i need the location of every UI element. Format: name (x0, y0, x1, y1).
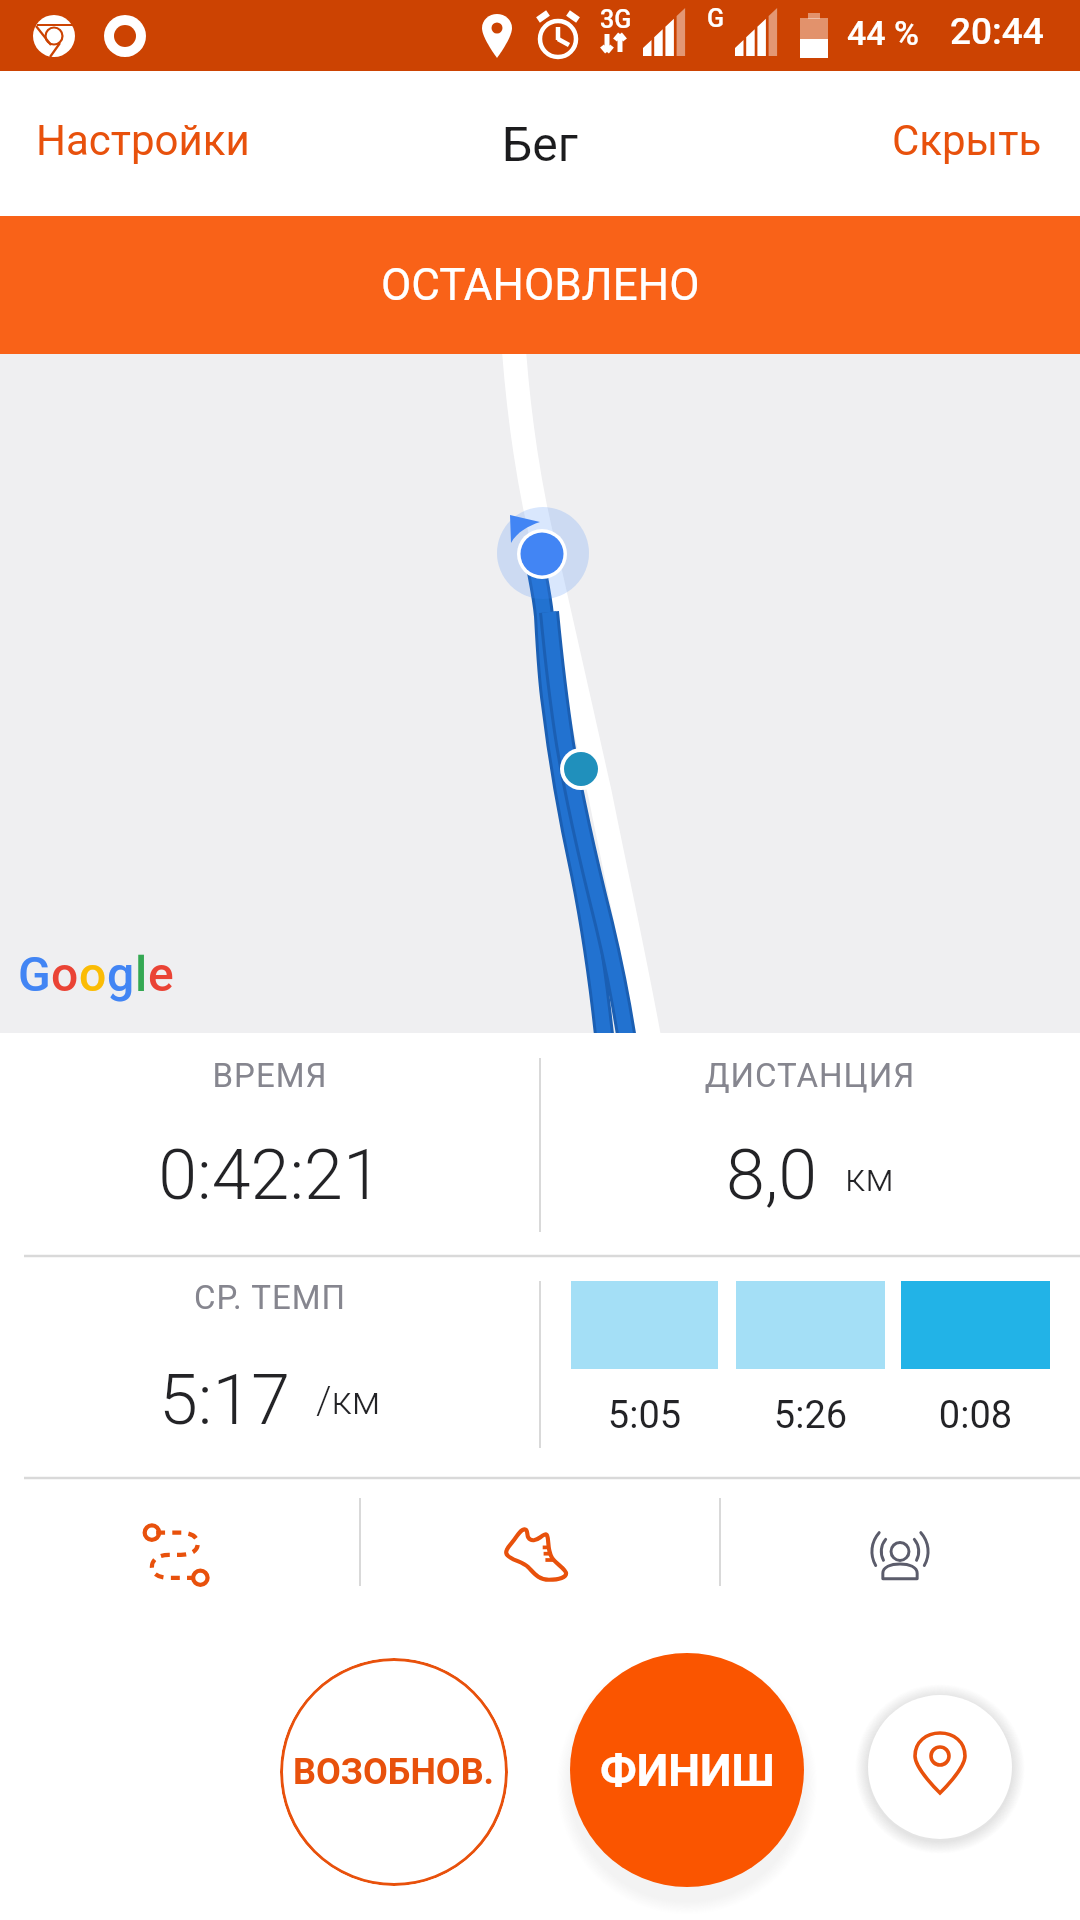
staticText: o (51, 946, 79, 1002)
staticText: СР. ТЕМП (0, 1278, 540, 1317)
staticText: км (845, 1155, 894, 1201)
staticText: e (148, 946, 174, 1002)
staticText: /км (316, 1378, 381, 1424)
staticText: 5:17 (159, 1359, 291, 1441)
staticText: G (707, 4, 725, 33)
button[interactable]: Скрыть (862, 93, 1080, 194)
button[interactable]: ДИСТАНЦИЯ (540, 1033, 1080, 1256)
staticText: 0:08 (901, 1393, 1050, 1438)
staticText: 3G (600, 5, 632, 34)
staticText: 44 % (847, 13, 920, 53)
staticText: ОСТАНОВЛЕНО (381, 259, 700, 311)
button[interactable]: Activity type (420, 1478, 660, 1606)
staticText: 20:44 (950, 10, 1044, 53)
button[interactable]: Center map (868, 1695, 1012, 1839)
staticText: g (107, 946, 135, 1002)
staticText: Скрыть (892, 116, 1042, 165)
button[interactable]: Настройки (0, 93, 280, 194)
staticText: ВРЕМЯ (0, 1056, 540, 1095)
button[interactable]: Route (60, 1478, 300, 1606)
button[interactable]: ВОЗОБНОВ. (280, 1658, 508, 1886)
staticText: 5:26 (736, 1393, 885, 1438)
button[interactable]: ФИНИШ (570, 1653, 804, 1887)
staticText: 0:42:21 (0, 1134, 540, 1216)
staticText: o (79, 946, 107, 1002)
staticText: 8,0 (726, 1134, 818, 1216)
button[interactable]: Live tracking (780, 1478, 1020, 1606)
button[interactable]: СР. ТЕМП (0, 1256, 540, 1478)
staticText: G (18, 946, 51, 1002)
staticText: ФИНИШ (600, 1744, 775, 1797)
staticText: Настройки (36, 116, 250, 165)
button[interactable]: ВРЕМЯ (0, 1033, 540, 1256)
button[interactable]: 5:05 (540, 1256, 1080, 1478)
button[interactable]: ОСТАНОВЛЕНО (0, 216, 1080, 354)
staticText: ВОЗОБНОВ. (293, 1751, 495, 1793)
staticText: l (135, 946, 148, 1002)
staticText: Бег (502, 116, 578, 172)
staticText: 5:05 (571, 1393, 718, 1438)
staticText: ДИСТАНЦИЯ (540, 1056, 1080, 1095)
